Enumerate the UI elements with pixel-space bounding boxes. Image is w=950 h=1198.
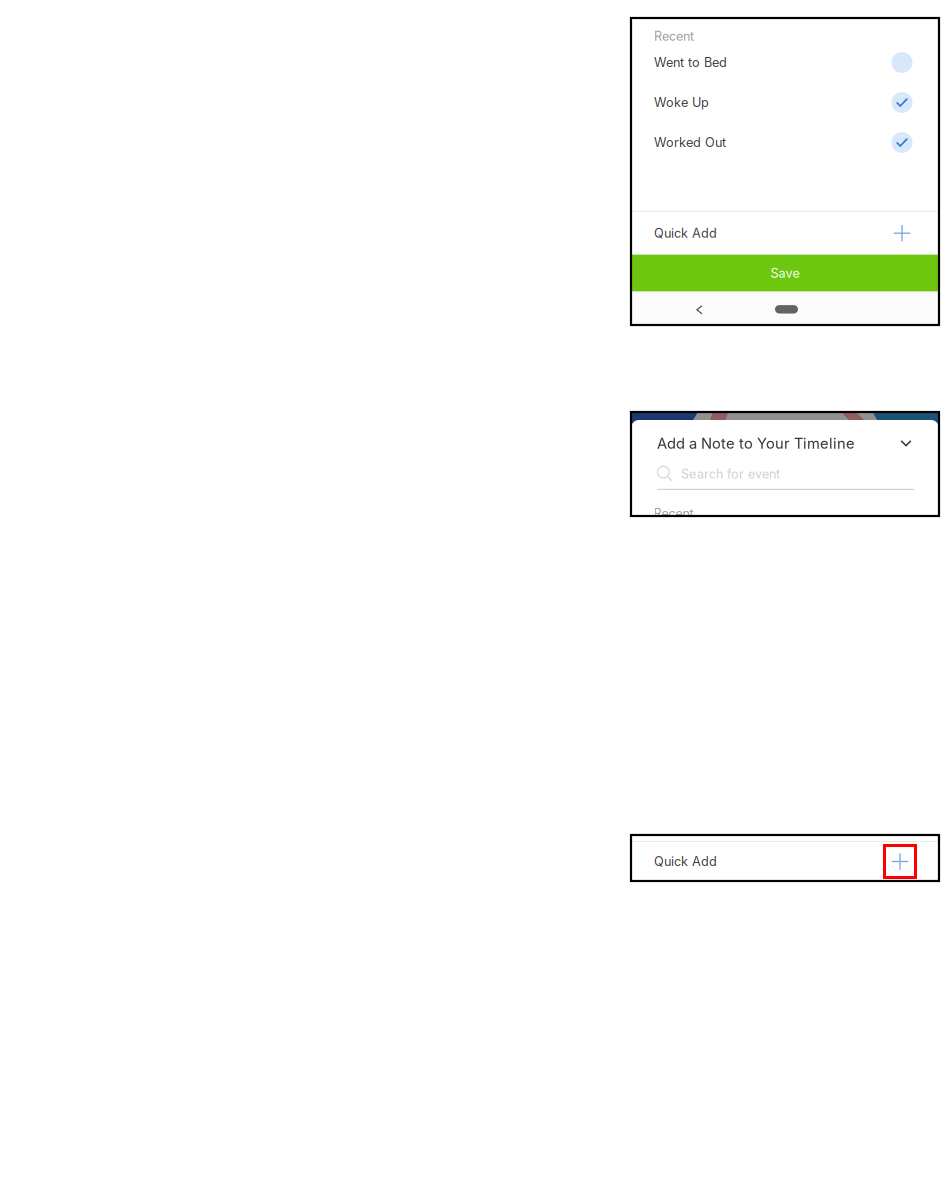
staticText: Search for event <box>681 466 780 481</box>
button[interactable]: Quick Add <box>631 842 939 881</box>
staticText: Went to Bed <box>654 55 727 70</box>
button[interactable]: Worked Out <box>631 122 939 162</box>
button[interactable]: Back <box>687 298 711 322</box>
staticText: Save <box>770 265 799 281</box>
button[interactable]: Went to Bed <box>631 42 939 82</box>
staticText: Recent <box>653 506 693 521</box>
staticText: Quick Add <box>654 225 717 241</box>
staticText: Add a Note to Your Timeline <box>657 434 855 452</box>
staticText: Worked Out <box>654 135 726 150</box>
staticText: Woke Up <box>654 95 709 110</box>
button[interactable]: Woke Up <box>631 82 939 122</box>
button[interactable]: Save <box>631 255 939 292</box>
staticText: Quick Add <box>654 854 717 869</box>
button[interactable]: Collapse <box>893 430 919 456</box>
button[interactable]: Quick Add <box>631 212 939 255</box>
staticText: Recent <box>654 29 694 44</box>
